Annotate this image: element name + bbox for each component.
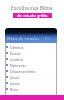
staticText: Números bbox=[10, 63, 27, 68]
staticText: Bíblia de estudos bbox=[7, 36, 40, 41]
button[interactable]: Juízes bbox=[6, 80, 56, 86]
staticText: Juízes bbox=[10, 81, 20, 86]
button[interactable]: Êxodo bbox=[6, 50, 56, 56]
button[interactable]: Bíblia de estudos bbox=[5, 28, 57, 43]
staticText: Josué bbox=[10, 75, 20, 80]
button[interactable]: Gênesis bbox=[6, 44, 56, 50]
button[interactable]: Levítico bbox=[6, 56, 56, 62]
staticText: Gênesis bbox=[10, 45, 24, 50]
staticText: Levítico bbox=[10, 57, 24, 62]
button[interactable]: Deuteronômio bbox=[6, 68, 56, 74]
button[interactable]: de estudo grátis bbox=[13, 13, 52, 18]
button[interactable]: Números bbox=[6, 62, 56, 68]
staticText: • • bbox=[45, 36, 50, 41]
staticText: de estudo grátis bbox=[17, 13, 48, 18]
staticText: Deuteronômio bbox=[10, 69, 36, 74]
staticText: Rute bbox=[10, 87, 18, 92]
button[interactable]: Josué bbox=[6, 74, 56, 80]
button[interactable]: Rute bbox=[6, 86, 56, 92]
staticText: Escolha sua Bíblia bbox=[11, 5, 53, 12]
staticText: Êxodo bbox=[10, 51, 21, 56]
